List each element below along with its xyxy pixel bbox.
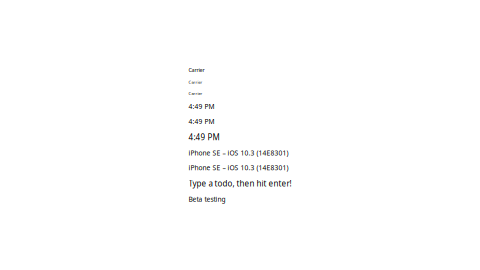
staticText: Carrier — [188, 66, 204, 73]
staticText: 4:49 PM — [188, 102, 214, 111]
staticText: Type a todo, then hit enter! — [188, 178, 291, 189]
staticText: 4:49 PM — [188, 117, 214, 126]
staticText: iPhone SE – iOS 10.3 (14E8301) — [188, 148, 288, 157]
staticText: iPhone SE – iOS 10.3 (14E8301) — [188, 163, 288, 172]
staticText: 4:49 PM — [188, 132, 219, 142]
staticText: Carrier — [188, 79, 202, 85]
staticText: Carrier — [188, 91, 202, 96]
staticText: Beta testing — [188, 195, 225, 204]
